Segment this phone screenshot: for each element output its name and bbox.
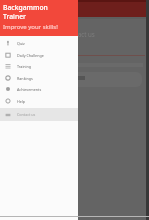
- staticText: Contact us: [17, 112, 36, 117]
- staticText: Rankings: [17, 76, 33, 81]
- button[interactable]: Quiz: [0, 37, 78, 49]
- button[interactable]: Training: [0, 60, 78, 72]
- staticText: Help: [17, 99, 26, 104]
- staticText: Improve your skills!: [3, 23, 58, 31]
- button[interactable]: Rankings: [0, 72, 78, 84]
- staticText: Quiz: [17, 41, 25, 46]
- staticText: Backgammon: [3, 3, 48, 12]
- staticText: Daily Challenge: [17, 53, 44, 58]
- button[interactable]: Daily Challenge: [0, 49, 78, 61]
- staticText: Training: [17, 64, 32, 69]
- staticText: Contact us: [64, 30, 95, 38]
- button[interactable]: Contact us: [0, 108, 78, 121]
- staticText: Trainer: [3, 12, 26, 21]
- button[interactable]: Help: [0, 95, 78, 107]
- button[interactable]: Achievements: [0, 83, 78, 95]
- staticText: Achievements: [17, 87, 42, 92]
